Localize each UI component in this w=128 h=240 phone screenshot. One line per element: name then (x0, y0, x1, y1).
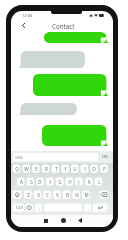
button[interactable] (44, 32, 109, 43)
button[interactable]: H (66, 178, 74, 186)
button[interactable] (18, 51, 85, 68)
button[interactable]: S (27, 178, 35, 186)
staticText: SMS (15, 155, 24, 160)
staticText: X (37, 192, 40, 198)
staticText: K (88, 179, 91, 185)
button[interactable]: B (63, 191, 71, 199)
button[interactable]: SMS (13, 153, 98, 161)
button[interactable]: D (36, 178, 44, 186)
staticText: A (20, 179, 23, 185)
button[interactable]: OK (98, 153, 111, 161)
staticText: L (98, 179, 101, 185)
button[interactable]: W (22, 165, 30, 173)
button[interactable]: U (71, 165, 79, 173)
staticText: T (55, 166, 58, 172)
button[interactable]: Z (24, 191, 32, 199)
button[interactable]: J (75, 178, 83, 186)
button[interactable]: Y (61, 165, 69, 173)
button[interactable]: X (34, 191, 42, 199)
button[interactable]: P (100, 165, 108, 173)
button[interactable]: Q (13, 165, 21, 173)
button[interactable]: . (84, 204, 91, 212)
button[interactable]: G (56, 178, 64, 186)
button[interactable]: C (43, 191, 51, 199)
staticText: D (38, 179, 42, 185)
button[interactable]: A (17, 178, 25, 186)
staticText: . (87, 205, 89, 211)
staticText: 12:00 (22, 13, 33, 18)
staticText: C (46, 192, 49, 198)
button[interactable]: Home (58, 216, 68, 225)
staticText: F (49, 179, 52, 185)
button[interactable]: I (81, 165, 89, 173)
button[interactable]: Recent apps (41, 216, 51, 225)
staticText: Y (64, 166, 67, 172)
staticText: W (24, 166, 29, 172)
staticText: R (45, 166, 48, 172)
staticText: V (56, 192, 59, 198)
staticText: B (66, 192, 69, 198)
button[interactable]: Back (75, 216, 85, 225)
staticText: J (78, 179, 80, 185)
button[interactable]: O (90, 165, 98, 173)
staticText: P (103, 166, 106, 172)
staticText: O (92, 166, 96, 172)
button[interactable] (42, 125, 109, 146)
button[interactable]: Key (13, 191, 22, 199)
staticText: G (58, 179, 62, 185)
button[interactable] (33, 74, 109, 96)
button[interactable]: K (85, 178, 93, 186)
staticText: Contact (52, 22, 75, 30)
staticText: M (84, 192, 89, 198)
staticText: N (75, 192, 79, 198)
button[interactable]: Back (18, 20, 29, 31)
button[interactable]: Key (25, 204, 33, 212)
button[interactable]: L (95, 178, 103, 186)
button[interactable] (18, 103, 77, 115)
button[interactable]: Key (93, 204, 108, 212)
button[interactable]: V (53, 191, 61, 199)
button[interactable]: N (73, 191, 81, 199)
staticText: OK (102, 154, 108, 160)
staticText: 123 (15, 205, 23, 211)
button[interactable]: E (32, 165, 40, 173)
button[interactable]: T (52, 165, 60, 173)
staticText: Q (15, 166, 19, 172)
staticText: U (73, 166, 77, 172)
button[interactable]: F (46, 178, 54, 186)
button[interactable]: 123 (13, 204, 24, 212)
staticText: Z (27, 192, 30, 198)
button[interactable]: Key (100, 191, 109, 199)
staticText: S (30, 179, 33, 185)
button[interactable]: , (35, 204, 42, 212)
staticText: I (84, 166, 86, 172)
button[interactable]: R (42, 165, 50, 173)
staticText: E (35, 166, 38, 172)
staticText: , (38, 205, 40, 211)
button[interactable]: M (82, 191, 90, 199)
staticText: H (68, 179, 72, 185)
